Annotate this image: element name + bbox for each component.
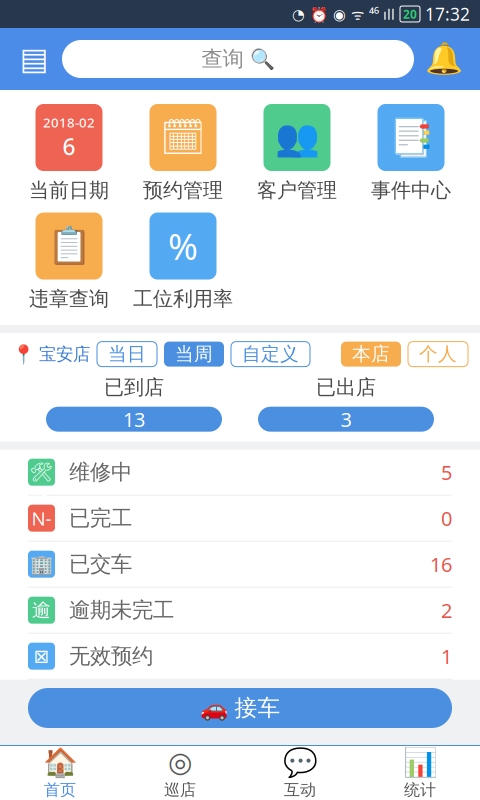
button[interactable]: 逾 <box>0 588 480 634</box>
staticText: % <box>168 222 198 270</box>
staticText: 宝安店 <box>39 343 90 365</box>
staticText: 逾 <box>32 599 51 622</box>
staticText: ◎ <box>168 746 192 778</box>
staticText: 5 <box>441 459 452 485</box>
button[interactable]: 个人 <box>408 342 468 367</box>
staticText: 预约管理 <box>143 178 223 203</box>
staticText: 工位利用率 <box>133 287 233 311</box>
staticText: 当前日期 <box>29 178 109 203</box>
staticText: 当周 <box>175 343 213 366</box>
staticText: 查询 <box>201 46 243 72</box>
staticText: 🏠 <box>42 746 77 778</box>
staticText: 6 <box>62 131 75 161</box>
staticText: 2 <box>441 597 452 623</box>
staticText: 📊 <box>402 746 437 778</box>
button[interactable]: ⊠ <box>0 634 480 680</box>
staticText: 维修中 <box>69 459 132 485</box>
staticText: 🏢 <box>30 553 53 575</box>
staticText: 已出店 <box>316 375 376 400</box>
staticText: 📍 <box>12 343 35 365</box>
button[interactable]: 📍 <box>12 343 90 365</box>
staticText: 当日 <box>108 343 146 366</box>
staticText: 逾期未完工 <box>69 597 174 623</box>
staticText: 客户管理 <box>257 178 337 203</box>
button[interactable]: 👥 <box>240 104 354 203</box>
staticText: 违章查询 <box>29 287 109 311</box>
button[interactable]: 当周 <box>164 342 224 367</box>
button[interactable]: ◎ <box>120 746 240 800</box>
staticText: ⊠ <box>33 646 49 667</box>
staticText: 已完工 <box>69 505 132 531</box>
staticText: ⁴⁶ ıll <box>369 4 395 24</box>
staticText: 个人 <box>419 343 457 366</box>
button[interactable]: END <box>0 496 480 542</box>
staticText: 🔍 <box>249 48 274 70</box>
staticText: 已到店 <box>104 375 164 400</box>
staticText: 17:32 <box>425 2 470 25</box>
button[interactable]: 🛠 <box>0 450 480 496</box>
button[interactable]: 本店 <box>341 342 401 367</box>
button[interactable]: % <box>126 213 240 311</box>
staticText: END <box>31 481 51 555</box>
button[interactable]: Notifications <box>414 28 474 90</box>
staticText: 统计 <box>404 780 436 800</box>
button[interactable]: 📋 <box>12 213 126 311</box>
button[interactable]: 🚗 <box>28 688 452 728</box>
staticText: 13 <box>123 406 145 432</box>
staticText: 已交车 <box>69 551 132 577</box>
button[interactable]: 2018-02 <box>12 104 126 203</box>
staticText: 20 <box>403 6 417 22</box>
button[interactable]: 🏢 <box>0 542 480 588</box>
staticText: ◔ ⏰ ◉ ᯤ <box>292 4 364 24</box>
button[interactable]: 📑 <box>354 104 468 203</box>
staticText: 📑 <box>388 117 433 158</box>
button[interactable]: 💬 <box>240 746 360 800</box>
staticText: 0 <box>441 505 452 531</box>
button[interactable]: 自定义 <box>231 342 310 367</box>
button[interactable]: 🏠 <box>0 746 120 800</box>
button[interactable]: 13 <box>46 407 222 432</box>
staticText: 16 <box>430 551 452 577</box>
staticText: 🔔 <box>425 41 463 76</box>
button[interactable]: 查询 <box>62 40 414 78</box>
staticText: 2018-02 <box>43 114 95 131</box>
staticText: 首页 <box>44 780 76 800</box>
staticText: 本店 <box>352 343 390 366</box>
staticText: 3 <box>340 406 351 432</box>
staticText: 👥 <box>274 117 319 158</box>
staticText: 事件中心 <box>371 178 451 203</box>
staticText: 互动 <box>284 780 316 800</box>
button[interactable]: 🗓 <box>126 104 240 203</box>
staticText: 🚗 <box>199 695 227 721</box>
button[interactable]: 当日 <box>97 342 157 367</box>
staticText: ▤ <box>19 42 48 76</box>
button[interactable]: 📊 <box>360 746 480 800</box>
staticText: 接车 <box>234 694 280 722</box>
staticText: 无效预约 <box>69 643 153 669</box>
staticText: 🛠 <box>29 461 53 483</box>
button[interactable]: 3 <box>258 407 434 432</box>
staticText: 💬 <box>282 746 317 778</box>
staticText: 巡店 <box>164 780 196 800</box>
staticText: 📋 <box>46 225 91 267</box>
staticText: 自定义 <box>242 343 299 366</box>
staticText: 1 <box>441 643 452 669</box>
button[interactable]: Menu <box>6 28 62 90</box>
staticText: 🗓 <box>160 117 206 158</box>
